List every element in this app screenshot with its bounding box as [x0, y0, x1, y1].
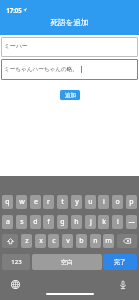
staticText: ミーちゃんハーちゃんの略。	[4, 66, 78, 73]
button[interactable]: 123	[2, 254, 30, 270]
staticText: n	[93, 236, 98, 246]
staticText: v	[66, 236, 70, 246]
button[interactable]: q	[2, 195, 13, 209]
button[interactable]: s	[16, 215, 27, 229]
staticText: a	[6, 217, 10, 227]
button[interactable]: h	[71, 215, 82, 229]
staticText: f	[47, 217, 50, 227]
staticText: h	[74, 217, 79, 227]
staticText: q	[5, 197, 10, 207]
button[interactable]: w	[16, 195, 27, 209]
staticText: t	[61, 197, 64, 207]
button[interactable]: ー	[126, 215, 137, 229]
staticText: o	[115, 197, 120, 207]
button[interactable]: Change keyboard language	[9, 278, 21, 290]
staticText: g	[60, 217, 65, 227]
button[interactable]: k	[98, 215, 109, 229]
button[interactable]: x	[35, 234, 46, 248]
button[interactable]: j	[85, 215, 96, 229]
staticText: 123	[11, 258, 22, 266]
staticText: e	[34, 197, 38, 207]
staticText: 完了	[114, 258, 126, 266]
button[interactable]: z	[21, 234, 32, 248]
staticText: y	[75, 197, 79, 207]
staticText: ー	[128, 218, 135, 227]
staticText: x	[39, 236, 43, 246]
button[interactable]: e	[30, 195, 41, 209]
staticText: c	[52, 236, 56, 246]
staticText: l	[117, 217, 119, 227]
staticText: ミーハー	[4, 42, 28, 49]
button[interactable]: c	[48, 234, 59, 248]
button[interactable]: Voice input	[117, 279, 129, 291]
button[interactable]: o	[112, 195, 123, 209]
button[interactable]: ミーちゃんハーちゃんの略。	[1, 59, 138, 80]
staticText: m	[105, 236, 112, 246]
button[interactable]: y	[71, 195, 82, 209]
button[interactable]: f	[43, 215, 54, 229]
staticText: w	[19, 197, 25, 207]
button[interactable]: Shift	[2, 234, 18, 248]
staticText: s	[20, 217, 24, 227]
button[interactable]: u	[85, 195, 96, 209]
staticText: i	[103, 197, 105, 207]
button[interactable]: Backspace	[117, 234, 137, 248]
button[interactable]: 空白	[32, 254, 102, 270]
button[interactable]: g	[57, 215, 68, 229]
staticText: 17:05	[6, 6, 22, 14]
button[interactable]: 追加	[60, 90, 80, 100]
staticText: z	[25, 236, 29, 246]
staticText: 死語を追加	[50, 18, 89, 28]
button[interactable]: 完了	[103, 254, 137, 270]
staticText: 空白	[61, 258, 73, 266]
button[interactable]: p	[126, 195, 137, 209]
staticText: d	[33, 217, 38, 227]
button[interactable]: n	[90, 234, 101, 248]
staticText: b	[79, 236, 84, 246]
button[interactable]: m	[103, 234, 114, 248]
staticText: j	[90, 217, 92, 227]
staticText: u	[88, 197, 93, 207]
button[interactable]: a	[2, 215, 13, 229]
button[interactable]: b	[76, 234, 87, 248]
button[interactable]: ミーハー	[1, 37, 138, 57]
button[interactable]: t	[57, 195, 68, 209]
staticText: k	[102, 217, 106, 227]
staticText: 追加	[65, 92, 76, 99]
button[interactable]: l	[112, 215, 123, 229]
button[interactable]: v	[62, 234, 73, 248]
staticText: r	[47, 197, 50, 207]
button[interactable]: d	[30, 215, 41, 229]
staticText: p	[129, 197, 134, 207]
button[interactable]: r	[43, 195, 54, 209]
button[interactable]: i	[98, 195, 109, 209]
